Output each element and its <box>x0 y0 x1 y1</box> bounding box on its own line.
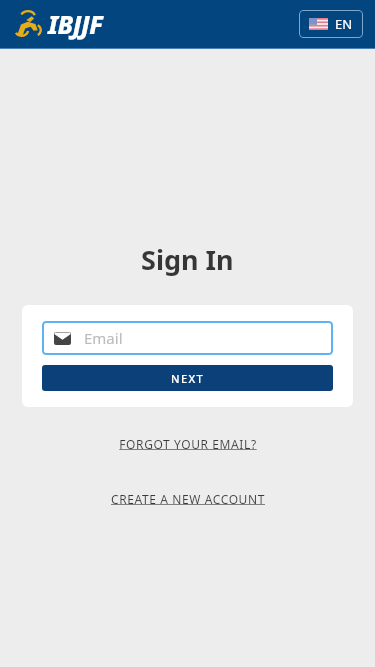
button[interactable]: NEXT <box>42 365 333 391</box>
staticText: CREATE A NEW ACCOUNT <box>111 491 265 507</box>
staticText: Email <box>84 328 123 348</box>
button[interactable]: CREATE A NEW ACCOUNT <box>105 488 271 510</box>
staticText: FORGOT YOUR EMAIL? <box>119 436 257 452</box>
staticText: IBJJF <box>48 7 103 41</box>
button[interactable]: FORGOT YOUR EMAIL? <box>113 433 263 455</box>
button[interactable]: Email <box>42 321 333 355</box>
button[interactable]: EN <box>299 10 363 38</box>
staticText: Sign In <box>141 241 234 278</box>
staticText: EN <box>335 15 353 33</box>
staticText: NEXT <box>171 371 205 386</box>
